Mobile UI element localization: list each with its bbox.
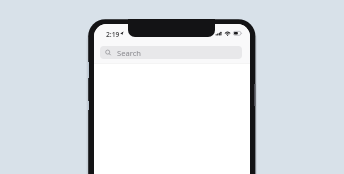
button[interactable]: Search (100, 46, 242, 59)
staticText: 2:19 (106, 30, 120, 39)
staticText: Search (117, 48, 142, 58)
